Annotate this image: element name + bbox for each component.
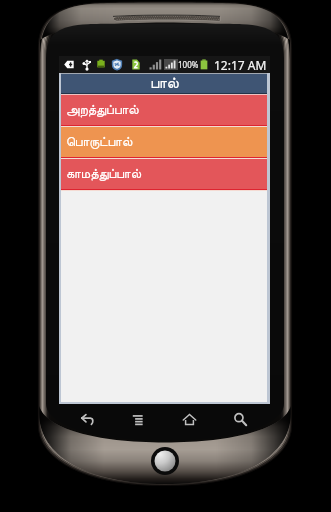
staticText: 12:17 AM (214, 57, 267, 73)
button[interactable]: அறத்துப்பால் (61, 95, 267, 125)
button[interactable]: காமத்துப்பால் (61, 159, 267, 189)
staticText: 100% (178, 59, 199, 70)
staticText: பால் (150, 76, 179, 91)
button[interactable]: Menu (113, 406, 164, 432)
button[interactable]: Home (164, 406, 215, 432)
staticText: அறத்துப்பால் (66, 104, 139, 117)
button[interactable]: பொருட்பால் (61, 127, 267, 157)
staticText: பொருட்பால் (66, 136, 133, 149)
button[interactable]: Search (215, 406, 266, 432)
button[interactable]: Back (62, 406, 113, 432)
staticText: காமத்துப்பால் (66, 168, 142, 181)
